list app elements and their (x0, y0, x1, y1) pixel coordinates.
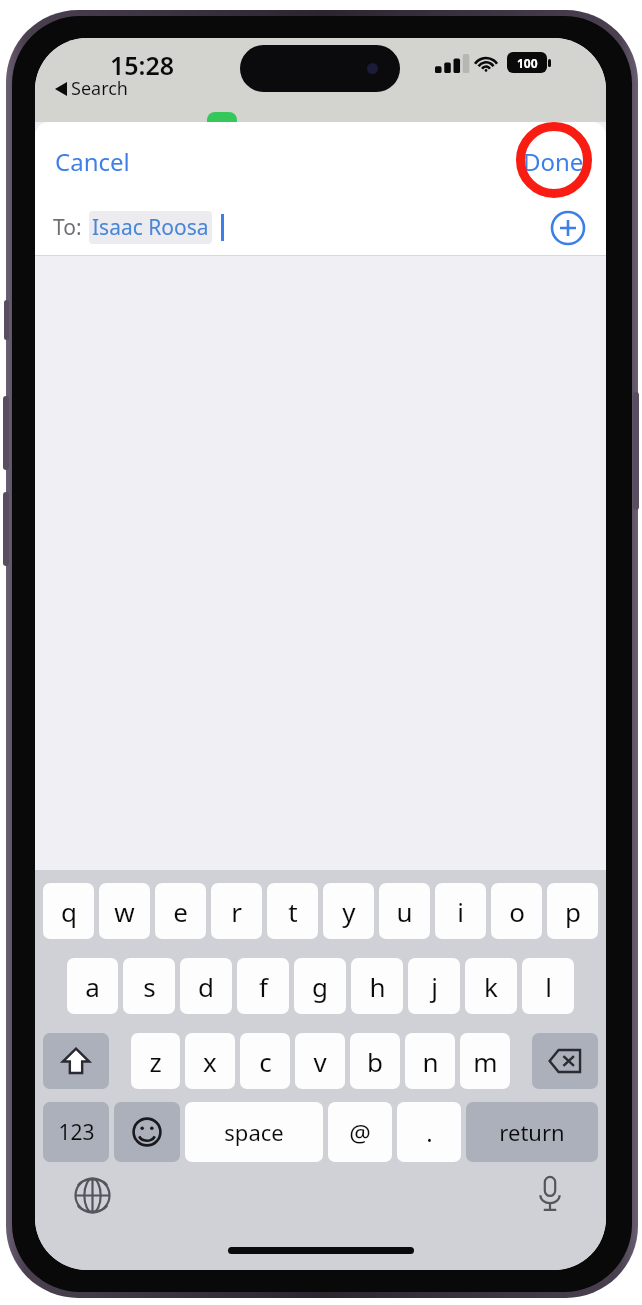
staticText: e (173, 894, 188, 929)
button[interactable]: l (522, 958, 574, 1014)
button[interactable]: c (240, 1033, 290, 1089)
staticText: u (396, 894, 413, 929)
button[interactable]: k (465, 958, 517, 1014)
staticText: n (422, 1044, 439, 1079)
staticText: z (149, 1044, 162, 1079)
staticText: g (312, 969, 328, 1004)
staticText: a (85, 969, 100, 1004)
staticText: p (565, 894, 581, 929)
button[interactable]: o (491, 883, 542, 939)
staticText: m (473, 1044, 498, 1079)
staticText: o (509, 894, 525, 929)
staticText: c (259, 1044, 272, 1079)
button[interactable]: Add contact (550, 210, 586, 246)
staticText: Cancel (55, 145, 130, 178)
staticText: Done (523, 145, 584, 178)
button[interactable]: r (211, 883, 262, 939)
staticText: . (426, 1116, 433, 1149)
staticText: r (231, 894, 242, 929)
staticText: t (288, 894, 298, 929)
staticText: s (143, 969, 156, 1004)
button[interactable]: 123 (43, 1102, 109, 1162)
staticText: 100 (517, 55, 538, 71)
staticText: Search (71, 76, 128, 101)
staticText: l (545, 969, 552, 1004)
button[interactable]: u (379, 883, 430, 939)
staticText: h (369, 969, 386, 1004)
button[interactable]: Dictate (530, 1174, 570, 1214)
staticText: space (224, 1117, 284, 1147)
button[interactable]: . (397, 1102, 461, 1162)
staticText: i (457, 894, 464, 929)
staticText: return (499, 1117, 565, 1147)
staticText: d (198, 969, 214, 1004)
button[interactable]: w (99, 883, 150, 939)
staticText: f (259, 969, 268, 1004)
button[interactable]: Cancel (49, 137, 136, 186)
staticText: j (431, 969, 438, 1004)
button[interactable]: z (131, 1033, 180, 1089)
button[interactable]: return (466, 1102, 598, 1162)
button[interactable]: s (123, 958, 175, 1014)
staticText: v (313, 1044, 327, 1079)
staticText: To: (53, 213, 82, 242)
button[interactable]: q (43, 883, 94, 939)
button[interactable]: g (294, 958, 346, 1014)
button[interactable]: f (237, 958, 289, 1014)
button[interactable]: m (460, 1033, 510, 1089)
staticText: b (367, 1044, 383, 1079)
staticText: q (61, 894, 77, 929)
button[interactable]: p (547, 883, 598, 939)
button[interactable]: @ (328, 1102, 392, 1162)
button[interactable]: t (267, 883, 318, 939)
staticText: w (114, 894, 135, 929)
button[interactable]: d (180, 958, 232, 1014)
staticText: 15:28 (110, 48, 175, 82)
button[interactable]: Backspace (532, 1033, 598, 1089)
button[interactable]: Isaac Roosa (92, 213, 209, 242)
button[interactable]: j (408, 958, 460, 1014)
staticText: @ (349, 1116, 371, 1149)
button[interactable]: e (155, 883, 206, 939)
button[interactable]: Emoji (114, 1102, 180, 1162)
button[interactable]: Shift (43, 1033, 109, 1089)
button[interactable]: a (67, 958, 118, 1014)
button[interactable]: space (185, 1102, 323, 1162)
staticText: Isaac Roosa (92, 213, 209, 242)
staticText: k (484, 969, 498, 1004)
button[interactable]: Done (517, 137, 590, 186)
button[interactable]: h (351, 958, 403, 1014)
staticText: y (342, 894, 356, 929)
button[interactable]: b (350, 1033, 400, 1089)
button[interactable]: n (405, 1033, 455, 1089)
button[interactable]: x (185, 1033, 235, 1089)
staticText: x (203, 1044, 217, 1079)
button[interactable]: v (295, 1033, 345, 1089)
button[interactable]: Change keyboard (72, 1175, 112, 1215)
button[interactable]: y (323, 883, 374, 939)
staticText: 123 (58, 1118, 95, 1147)
button[interactable]: i (435, 883, 486, 939)
